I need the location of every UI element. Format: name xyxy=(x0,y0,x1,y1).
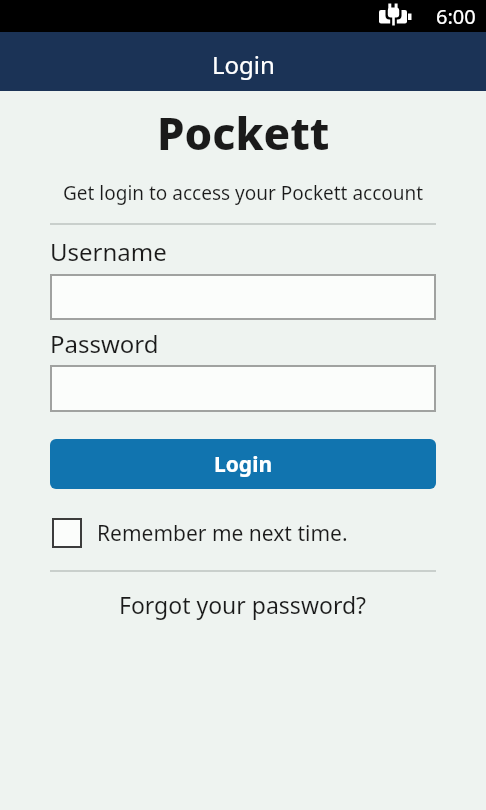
staticText: Username xyxy=(50,235,167,268)
button[interactable]: Remember me next time. xyxy=(50,518,436,548)
button[interactable] xyxy=(50,274,436,320)
staticText: Login xyxy=(214,450,273,479)
staticText: Get login to access your Pockett account xyxy=(63,180,424,206)
staticText: Login xyxy=(212,48,275,81)
button[interactable]: Login xyxy=(50,439,436,489)
staticText: Forgot your password? xyxy=(119,589,367,620)
staticText: Remember me next time. xyxy=(97,519,348,548)
button[interactable]: Forgot your password? xyxy=(50,589,436,620)
button[interactable] xyxy=(50,365,436,412)
staticText: Password xyxy=(50,327,159,360)
staticText: 6:00 xyxy=(436,3,476,30)
staticText: Pockett xyxy=(157,103,330,163)
